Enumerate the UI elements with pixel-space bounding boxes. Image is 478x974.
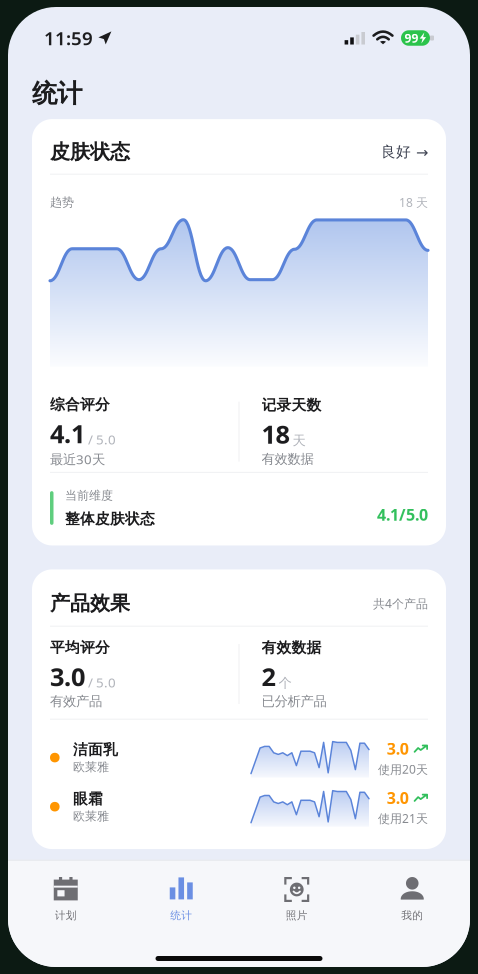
staticText: 眼霜: [73, 790, 103, 808]
staticText: 有效数据: [261, 638, 321, 656]
staticText: 3.0: [50, 659, 85, 693]
button[interactable]: 照片: [239, 861, 354, 922]
staticText: 4.1/5.0: [377, 504, 428, 525]
staticText: 皮肤状态: [50, 140, 130, 164]
staticText: 18 天: [399, 194, 428, 210]
button[interactable]: 皮肤状态: [50, 119, 428, 174]
staticText: 99: [404, 30, 418, 46]
staticText: 统计: [170, 909, 192, 922]
staticText: 良好 →: [381, 143, 428, 161]
staticText: 照片: [286, 909, 308, 922]
button[interactable]: 计划: [8, 861, 123, 922]
staticText: 使用20天: [378, 761, 428, 777]
staticText: 平均评分: [50, 638, 110, 656]
staticText: 18: [261, 417, 289, 451]
staticText: 天: [292, 432, 305, 449]
staticText: 共4个产品: [373, 595, 428, 611]
staticText: 有效产品: [50, 693, 102, 710]
staticText: 4.1: [50, 416, 85, 450]
staticText: 有效数据: [261, 451, 313, 467]
staticText: 3.0: [387, 787, 409, 808]
button[interactable]: 统计: [123, 861, 239, 922]
staticText: 最近30天: [50, 450, 105, 468]
staticText: 记录天数: [261, 396, 321, 414]
staticText: 个: [278, 675, 291, 691]
staticText: 整体皮肤状态: [65, 510, 155, 528]
button[interactable]: 眼霜: [50, 782, 428, 831]
button[interactable]: 洁面乳: [50, 733, 428, 782]
staticText: 当前维度: [65, 488, 113, 503]
staticText: 2: [261, 659, 275, 693]
staticText: 使用21天: [378, 810, 428, 826]
staticText: 计划: [55, 909, 77, 922]
staticText: 我的: [401, 909, 423, 922]
button[interactable]: 我的: [354, 861, 470, 922]
staticText: 洁面乳: [73, 741, 118, 759]
staticText: 欧莱雅: [73, 760, 109, 774]
staticText: 已分析产品: [261, 693, 326, 710]
staticText: / 5.0: [88, 430, 116, 448]
staticText: 统计: [32, 78, 82, 109]
staticText: 欧莱雅: [73, 809, 109, 823]
staticText: 3.0: [387, 738, 409, 759]
staticText: / 5.0: [88, 673, 116, 691]
staticText: 趋势: [50, 195, 74, 210]
staticText: 综合评分: [50, 395, 110, 413]
staticText: 产品效果: [50, 591, 130, 616]
staticText: 11:59: [44, 26, 93, 50]
